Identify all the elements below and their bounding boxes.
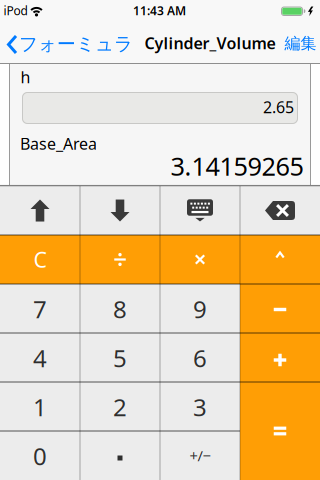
button[interactable]: 編集 [281,23,320,64]
staticText: 7 [33,293,47,325]
button[interactable]: 1 [0,382,80,431]
staticText: 3 [193,391,207,423]
button[interactable]: Equals [240,382,320,480]
staticText: 2.65 [263,96,294,118]
button[interactable]: 4 [0,333,80,382]
button[interactable]: 0 [0,431,80,480]
staticText: 2 [113,391,127,423]
button[interactable]: 2 [80,382,160,431]
button[interactable]: 3 [160,382,240,431]
staticText: 3.14159265 [170,149,303,183]
button[interactable]: Decimal point [80,431,160,480]
button[interactable]: Dismiss keyboard [160,186,240,235]
staticText: 9 [193,293,207,325]
staticText: 6 [193,342,207,374]
staticText: 1 [33,391,47,423]
button[interactable]: Divide [80,235,160,284]
staticText: 5 [113,342,127,374]
button[interactable]: Add [240,333,320,382]
button[interactable]: Shift up [0,186,80,235]
staticText: +/− [189,446,210,465]
button[interactable]: Subtract [240,284,320,333]
button[interactable]: Plus minus [160,431,240,480]
button[interactable]: Delete [240,186,320,235]
button[interactable]: 8 [80,284,160,333]
button[interactable]: Clear [0,235,80,284]
staticText: 0 [33,440,47,472]
staticText: C [33,245,46,274]
button[interactable]: 9 [160,284,240,333]
staticText: 編集 [284,34,316,53]
button[interactable]: 5 [80,333,160,382]
button[interactable]: 7 [0,284,80,333]
button[interactable]: Multiply [160,235,240,284]
staticText: h [20,66,30,88]
button[interactable]: 6 [160,333,240,382]
staticText: Cylinder_Volume [144,32,275,54]
button[interactable]: h value field [22,92,298,124]
staticText: 11:43 AM [133,2,186,18]
staticText: iPod [3,2,27,18]
button[interactable]: Power [240,235,320,284]
staticText: フォーミュラ [19,32,133,55]
staticText: 4 [33,342,47,374]
staticText: Base_Area [20,133,97,154]
button[interactable]: Back [0,23,130,64]
staticText: 8 [113,293,127,325]
button[interactable]: Shift down [80,186,160,235]
